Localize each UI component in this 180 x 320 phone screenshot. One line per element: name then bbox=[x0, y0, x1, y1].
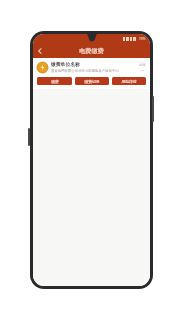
button[interactable]: 缴费 bbox=[37, 77, 72, 85]
button[interactable]: 缴费单位名称 bbox=[33, 58, 150, 89]
staticText: 余额 bbox=[139, 63, 146, 67]
button[interactable]: 缴费记录 bbox=[75, 77, 109, 85]
button[interactable]: 用电详情 bbox=[112, 77, 146, 85]
staticText: 缴费记录 bbox=[84, 79, 100, 84]
staticText: 电费缴费 bbox=[79, 47, 104, 55]
staticText: 19% bbox=[139, 37, 146, 41]
staticText: 缴费 bbox=[51, 79, 59, 84]
staticText: 国家电网有限公司华东分部用电客户服务中心 bbox=[51, 69, 119, 73]
staticText: 用电详情 bbox=[121, 79, 137, 84]
staticText: — bbox=[141, 68, 145, 72]
button[interactable]: Back bbox=[33, 44, 47, 58]
staticText: 缴费单位名称 bbox=[51, 61, 80, 67]
